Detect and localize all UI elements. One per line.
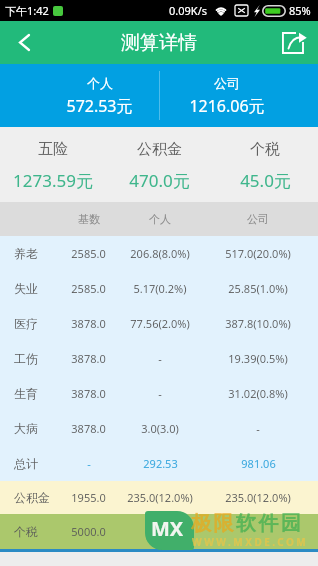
button[interactable]: 个税 — [212, 127, 318, 202]
staticText: 大病 — [14, 421, 38, 436]
staticText: - — [158, 386, 162, 401]
staticText: 1273.59元 — [13, 169, 93, 192]
staticText: 公积金 — [14, 490, 50, 505]
staticText: 5000.0 — [71, 524, 106, 539]
staticText: 公司 — [247, 212, 269, 226]
staticText: 下午1:42 — [5, 3, 49, 18]
button[interactable]: 公积金 — [106, 127, 212, 202]
staticText: 公积金 — [137, 140, 182, 159]
staticText: 31.02(0.8%) — [228, 386, 288, 401]
staticText: 45.0元 — [240, 169, 291, 192]
staticText: 2585.0 — [71, 246, 106, 261]
staticText: 个税 — [14, 524, 38, 539]
staticText: 3.0(3.0) — [141, 421, 179, 436]
staticText: 软件园 — [236, 511, 304, 536]
staticText: 个税 — [250, 140, 280, 159]
staticText: 19.39(0.5%) — [228, 351, 288, 366]
button[interactable]: 五险 — [0, 127, 106, 202]
staticText: 工伤 — [14, 351, 38, 366]
staticText: 235.0(12.0%) — [127, 490, 193, 505]
staticText: 总计 — [14, 456, 38, 471]
button[interactable]: Back — [0, 21, 46, 64]
staticText: 981.06 — [241, 456, 276, 471]
staticText: 公司 — [214, 75, 240, 91]
button[interactable]: 总计 — [0, 446, 318, 481]
staticText: 1955.0 — [71, 490, 106, 505]
button[interactable]: 大病 — [0, 411, 318, 446]
staticText: 25.85(1.0%) — [228, 281, 288, 296]
staticText: - — [256, 421, 260, 436]
staticText: 医疗 — [14, 316, 38, 331]
staticText: 个人 — [149, 212, 171, 226]
staticText: 3878.0 — [71, 351, 106, 366]
staticText: 3878.0 — [71, 386, 106, 401]
staticText: 470.0元 — [129, 169, 190, 192]
staticText: 235.0(12.0%) — [225, 490, 291, 505]
staticText: 292.53 — [143, 456, 178, 471]
staticText: 3878.0 — [71, 421, 106, 436]
staticText: WWW.MXDE.COM — [192, 535, 309, 549]
staticText: 5.17(0.2%) — [133, 281, 187, 296]
staticText: 生育 — [14, 386, 38, 401]
staticText: 失业 — [14, 281, 38, 296]
button[interactable]: 工伤 — [0, 341, 318, 376]
button[interactable]: 养老 — [0, 236, 318, 271]
staticText: 85% — [289, 3, 311, 18]
staticText: 77.56(2.0%) — [130, 316, 190, 331]
button[interactable]: Share — [272, 21, 318, 64]
staticText: 517.0(20.0%) — [225, 246, 291, 261]
staticText: 206.8(8.0%) — [130, 246, 190, 261]
staticText: 测算详情 — [121, 31, 197, 55]
staticText: 2585.0 — [71, 281, 106, 296]
staticText: 基数 — [78, 212, 100, 226]
staticText: 养老 — [14, 246, 38, 261]
staticText: - — [87, 456, 91, 471]
staticText: - — [158, 351, 162, 366]
staticText: 572.53元 — [66, 95, 133, 117]
staticText: 极限 — [191, 511, 236, 536]
button[interactable]: 失业 — [0, 271, 318, 306]
button[interactable]: 公积金 — [0, 481, 318, 514]
button[interactable]: 医疗 — [0, 306, 318, 341]
staticText: 3878.0 — [71, 316, 106, 331]
button[interactable]: 生育 — [0, 376, 318, 411]
staticText: 个人 — [87, 75, 113, 91]
staticText: 五险 — [38, 140, 68, 159]
staticText: 0.09K/s — [169, 3, 207, 18]
staticText: MX — [151, 515, 184, 542]
button[interactable]: 个税 — [0, 514, 318, 549]
staticText: 1216.06元 — [189, 95, 265, 117]
staticText: 387.8(10.0%) — [225, 316, 291, 331]
